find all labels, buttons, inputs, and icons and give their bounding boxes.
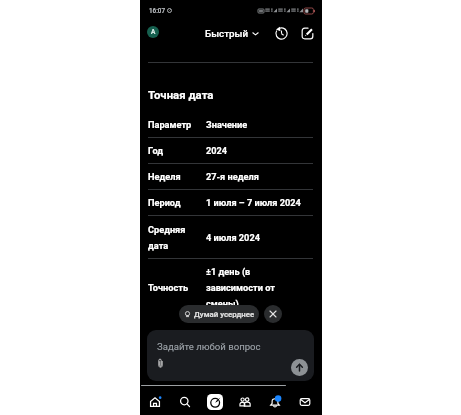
staticText: 4 июля 2024 — [206, 232, 313, 243]
staticText: Год — [148, 145, 206, 156]
staticText: Быстрый — [205, 28, 249, 39]
button[interactable]: Account — [147, 26, 159, 38]
button[interactable]: People — [237, 394, 253, 410]
button[interactable]: Home — [147, 394, 163, 410]
staticText: Думай усерднее — [194, 310, 255, 319]
button[interactable]: Attach file — [154, 356, 167, 369]
staticText: 27-я неделя — [206, 171, 313, 182]
staticText: Средняя дата — [148, 224, 206, 251]
staticText: A — [151, 28, 156, 36]
staticText: Значение — [206, 119, 313, 130]
button[interactable]: Notifications — [267, 394, 283, 410]
button[interactable]: Send — [291, 359, 308, 376]
button[interactable]: Explore — [207, 394, 223, 410]
button[interactable]: Mail — [297, 394, 313, 410]
staticText: Точная дата — [148, 88, 214, 101]
staticText: Задайте любой вопрос — [157, 341, 261, 352]
button[interactable]: New chat — [298, 24, 316, 42]
button[interactable]: Close — [264, 305, 282, 323]
button[interactable]: Быстрый — [201, 25, 263, 42]
staticText: 1 июля – 7 июля 2024 — [206, 197, 313, 208]
staticText: Точность — [148, 282, 206, 293]
staticText: ±1 день (в зависимости от смены) — [206, 266, 313, 309]
staticText: Неделя — [148, 171, 206, 182]
button[interactable]: Думай усерднее — [179, 305, 259, 323]
button[interactable]: History — [272, 24, 290, 42]
staticText: 16:07 — [149, 7, 165, 14]
button[interactable]: Search — [177, 394, 193, 410]
button[interactable]: Задайте любой вопрос — [147, 330, 314, 381]
staticText: Период — [148, 197, 206, 208]
staticText: Параметр — [148, 119, 206, 130]
staticText: 2024 — [206, 145, 313, 156]
